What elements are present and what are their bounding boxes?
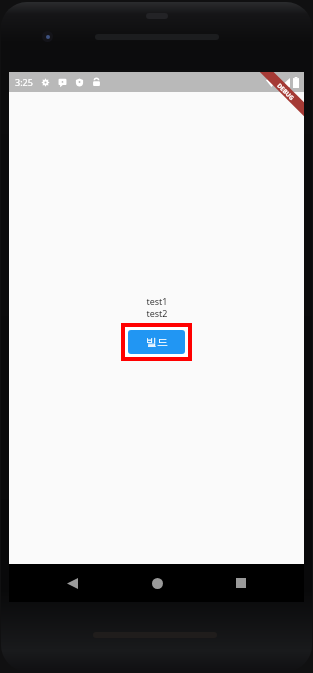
staticText: test2: [146, 307, 168, 319]
staticText: DEBUG: [275, 82, 296, 102]
button[interactable]: Back: [50, 564, 94, 602]
staticText: test1: [146, 295, 168, 307]
staticText: 3:25: [15, 76, 33, 88]
staticText: 빌드: [146, 335, 168, 349]
button[interactable]: 빌드: [128, 330, 185, 354]
button[interactable]: Home: [135, 564, 179, 602]
button[interactable]: Recents: [219, 564, 263, 602]
